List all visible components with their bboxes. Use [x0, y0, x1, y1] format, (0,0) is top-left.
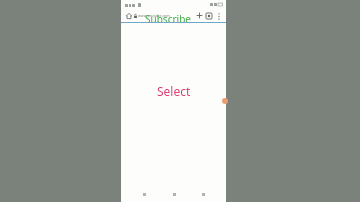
button[interactable]: Back [139, 189, 149, 199]
staticText: Subscribe [145, 12, 191, 25]
staticText: www.youtube.com [138, 13, 170, 18]
button[interactable]: Tabs [204, 11, 214, 21]
button[interactable]: Select [157, 83, 191, 99]
button[interactable]: Home [169, 189, 179, 199]
button[interactable]: www.youtube.com [133, 10, 195, 21]
button[interactable]: New tab [195, 11, 204, 20]
button[interactable]: Home [124, 11, 133, 20]
button[interactable]: Recent apps [198, 189, 208, 199]
button[interactable]: More options [214, 11, 224, 21]
